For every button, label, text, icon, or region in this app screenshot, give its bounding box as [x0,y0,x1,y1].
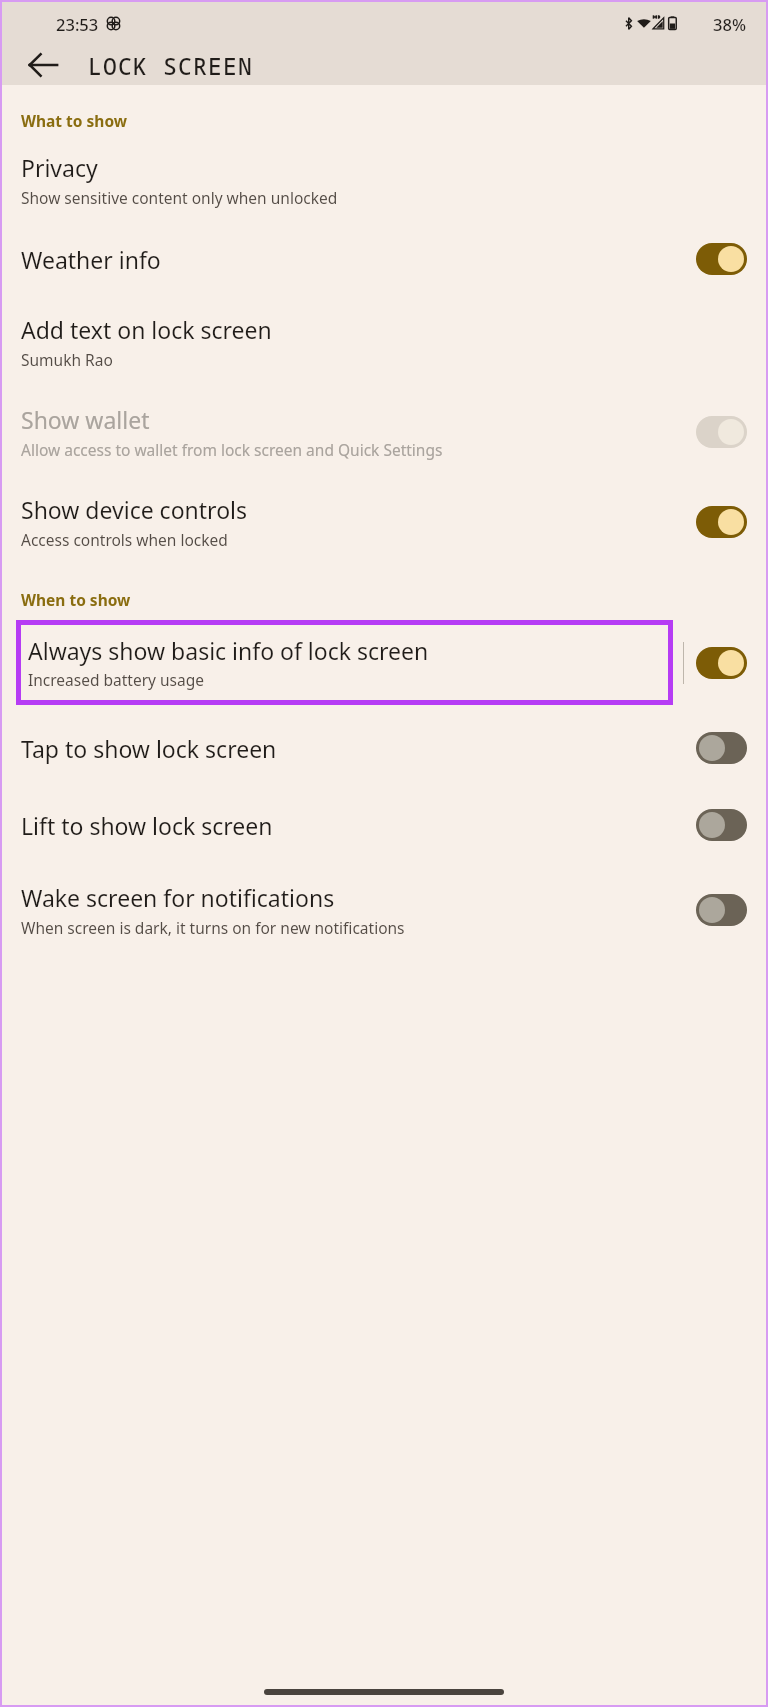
button[interactable]: Toggle off [696,809,747,841]
button[interactable]: Add text on lock screen [2,297,766,387]
staticText: Always show basic info of lock screen [28,635,429,666]
button[interactable]: Show wallet [2,387,766,477]
button[interactable]: Wake screen for notifications [2,863,766,948]
staticText: Lift to show lock screen [21,810,688,841]
staticText: Show device controls [21,494,688,525]
staticText: Show sensitive content only when unlocke… [21,187,739,208]
staticText: Wake screen for notifications [21,882,635,913]
staticText: Sumukh Rao [21,349,739,370]
button[interactable]: Always show basic info of lock screen [21,625,668,700]
staticText: Privacy [21,152,739,183]
staticText: When to show [21,589,131,610]
staticText: Access controls when locked [21,529,688,550]
button[interactable]: Toggle on [696,416,747,448]
staticText: Tap to show lock screen [21,733,688,764]
button[interactable]: Toggle on [696,243,747,275]
button[interactable]: Lift to show lock screen [2,787,766,863]
staticText: What to show [21,110,128,131]
staticText: Weather info [21,244,688,275]
button[interactable]: Back [14,45,72,85]
button[interactable]: Toggle off [696,732,747,764]
staticText: When screen is dark, it turns on for new… [21,917,635,938]
button[interactable]: Toggle on [696,647,747,679]
staticText: Show wallet [21,404,641,435]
button[interactable]: Privacy [2,139,766,222]
staticText: 38% [713,13,746,35]
button[interactable]: Weather info [2,222,766,297]
button[interactable]: Toggle off [696,894,747,926]
staticText: LOCK SCREEN [88,50,254,81]
staticText: Increased battery usage [28,669,205,690]
button[interactable]: Tap to show lock screen [2,709,766,787]
staticText: Allow access to wallet from lock screen … [21,439,641,460]
staticText: 23:53 [56,13,99,35]
staticText: Add text on lock screen [21,314,739,345]
button[interactable]: Toggle on [696,506,747,538]
button[interactable]: Show device controls [2,477,766,567]
